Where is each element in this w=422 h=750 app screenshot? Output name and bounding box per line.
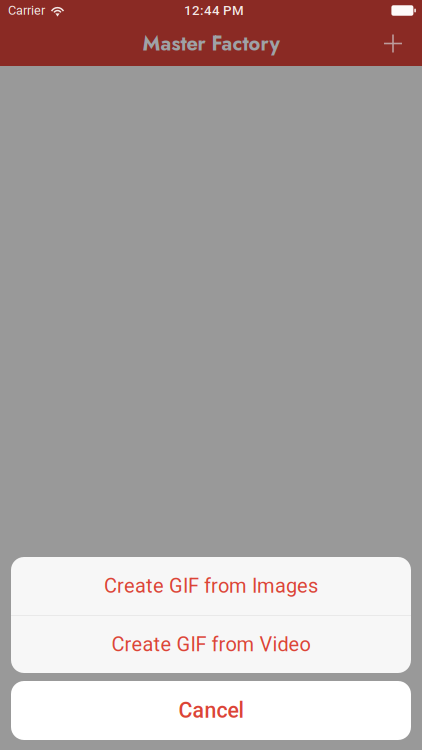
staticText: Master Factory bbox=[142, 29, 279, 58]
button[interactable]: Add bbox=[364, 21, 422, 65]
staticText: Carrier bbox=[8, 3, 45, 18]
staticText: Cancel bbox=[178, 698, 243, 723]
button[interactable]: Create GIF from Video bbox=[11, 616, 411, 673]
button[interactable]: Cancel bbox=[11, 681, 411, 740]
staticText: Create GIF from Images bbox=[104, 574, 318, 598]
staticText: 12:44 PM bbox=[184, 3, 244, 18]
button[interactable]: Create GIF from Images bbox=[11, 557, 411, 615]
staticText: Create GIF from Video bbox=[111, 633, 310, 656]
